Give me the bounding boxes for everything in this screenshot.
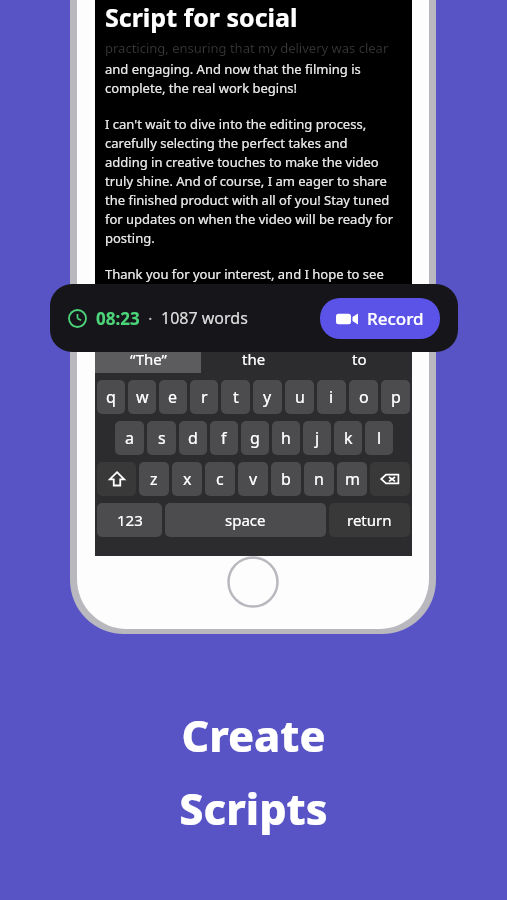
staticText: to xyxy=(352,349,367,369)
staticText: k xyxy=(344,427,353,449)
staticText: 08:23 xyxy=(96,307,140,330)
staticText: and engaging. And now that the filming i… xyxy=(105,60,361,97)
staticText: z xyxy=(150,468,158,490)
staticText: practicing, ensuring that my delivery wa… xyxy=(105,39,389,57)
button[interactable]: w xyxy=(128,380,156,414)
staticText: r xyxy=(201,386,208,408)
button[interactable]: Shift xyxy=(97,462,136,496)
button[interactable]: o xyxy=(349,380,378,414)
button[interactable]: x xyxy=(172,462,202,496)
staticText: space xyxy=(225,510,266,530)
staticText: Record xyxy=(367,307,424,330)
staticText: · xyxy=(148,307,153,330)
staticText: 123 xyxy=(117,510,143,530)
staticText: g xyxy=(250,427,260,449)
staticText: l xyxy=(377,427,382,449)
button[interactable]: Backspace xyxy=(370,462,410,496)
button[interactable]: s xyxy=(147,421,176,455)
button[interactable]: m xyxy=(337,462,367,496)
button[interactable]: the xyxy=(201,345,307,373)
button[interactable]: i xyxy=(317,380,346,414)
button[interactable]: 123 xyxy=(97,503,162,537)
button[interactable]: f xyxy=(210,421,238,455)
button[interactable]: u xyxy=(285,380,314,414)
staticText: h xyxy=(281,427,291,449)
staticText: y xyxy=(263,386,272,408)
staticText: m xyxy=(345,468,360,490)
staticText: return xyxy=(347,510,392,530)
staticText: p xyxy=(391,386,401,408)
button[interactable]: z xyxy=(139,462,169,496)
staticText: f xyxy=(221,427,227,449)
staticText: Scripts xyxy=(179,779,328,838)
staticText: c xyxy=(216,468,224,490)
staticText: b xyxy=(281,468,291,490)
staticText: q xyxy=(106,386,116,408)
staticText: d xyxy=(188,427,198,449)
staticText: Script for social xyxy=(105,0,298,34)
staticText: x xyxy=(183,468,192,490)
staticText: w xyxy=(136,386,149,408)
staticText: v xyxy=(249,468,258,490)
staticText: a xyxy=(125,427,134,449)
button[interactable]: j xyxy=(303,421,331,455)
button[interactable]: r xyxy=(190,380,218,414)
staticText: n xyxy=(314,468,324,490)
staticText: t xyxy=(233,386,239,408)
staticText: I can't wait to dive into the editing pr… xyxy=(105,115,394,247)
staticText: “The” xyxy=(130,349,167,369)
button[interactable]: to xyxy=(307,345,412,373)
button[interactable]: Home xyxy=(227,556,279,608)
staticText: e xyxy=(168,386,178,408)
button[interactable]: d xyxy=(179,421,207,455)
button[interactable]: h xyxy=(272,421,300,455)
button[interactable]: c xyxy=(205,462,235,496)
staticText: j xyxy=(315,427,320,449)
staticText: the xyxy=(242,349,266,369)
button[interactable]: Record xyxy=(320,298,440,339)
button[interactable]: l xyxy=(365,421,393,455)
button[interactable]: q xyxy=(97,380,125,414)
button[interactable]: g xyxy=(241,421,269,455)
staticText: Create xyxy=(181,706,326,765)
staticText: 1087 words xyxy=(161,307,248,329)
button[interactable]: “The” xyxy=(95,345,201,373)
button[interactable]: n xyxy=(304,462,334,496)
staticText: o xyxy=(359,386,369,408)
button[interactable]: e xyxy=(159,380,187,414)
button[interactable]: space xyxy=(165,503,326,537)
staticText: u xyxy=(295,386,305,408)
button[interactable]: k xyxy=(334,421,362,455)
staticText: s xyxy=(158,427,166,449)
button[interactable]: b xyxy=(271,462,301,496)
staticText: Thank you for your interest, and I hope … xyxy=(105,265,384,283)
staticText: i xyxy=(329,386,334,408)
button[interactable]: return xyxy=(329,503,410,537)
button[interactable]: p xyxy=(381,380,410,414)
button[interactable]: a xyxy=(115,421,144,455)
button[interactable]: v xyxy=(238,462,268,496)
button[interactable]: y xyxy=(253,380,282,414)
button[interactable]: t xyxy=(221,380,250,414)
